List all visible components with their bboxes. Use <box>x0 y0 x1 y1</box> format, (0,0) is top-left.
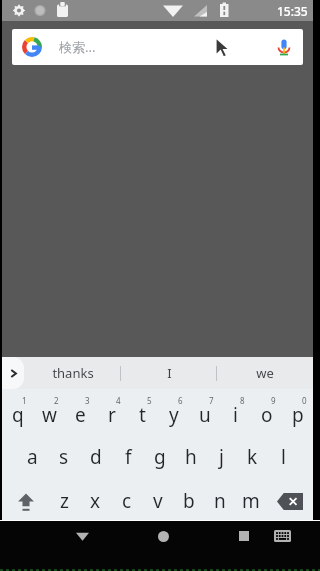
staticText: n <box>214 488 226 514</box>
staticText: j <box>219 444 224 470</box>
staticText: y <box>169 402 179 428</box>
button[interactable]: Hide keyboard <box>65 520 99 552</box>
staticText: 9 <box>271 395 276 406</box>
staticText: v <box>153 488 163 514</box>
staticText: 5 <box>147 395 152 406</box>
button[interactable]: we <box>217 357 313 389</box>
staticText: i <box>233 402 238 428</box>
button[interactable]: thanks <box>24 357 121 389</box>
staticText: k <box>247 444 258 470</box>
button[interactable]: Backspace <box>266 479 313 523</box>
staticText: 7 <box>209 395 214 406</box>
button[interactable]: Shift <box>2 479 49 523</box>
staticText: 4 <box>116 395 121 406</box>
button[interactable]: l <box>268 435 299 479</box>
button[interactable]: 1 <box>2 391 34 435</box>
button[interactable]: More suggestions <box>2 357 24 389</box>
button[interactable]: 3 <box>65 391 96 435</box>
staticText: 検索... <box>59 38 96 56</box>
button[interactable]: Home <box>146 520 180 552</box>
staticText: m <box>242 488 260 514</box>
button[interactable]: m <box>235 479 266 523</box>
button[interactable]: v <box>142 479 173 523</box>
staticText: e <box>75 402 86 428</box>
staticText: c <box>122 488 132 514</box>
staticText: English <box>152 539 190 554</box>
staticText: o <box>261 402 273 428</box>
button[interactable]: 5 <box>127 391 158 435</box>
staticText: l <box>281 444 286 470</box>
staticText: 3 <box>85 395 90 406</box>
staticText: we <box>256 364 274 382</box>
staticText: f <box>125 444 132 470</box>
button[interactable]: 2 <box>34 391 65 435</box>
button[interactable]: f <box>112 435 144 479</box>
staticText: I <box>167 364 172 382</box>
button[interactable]: k <box>237 435 268 479</box>
staticText: q <box>12 402 24 428</box>
staticText: p <box>292 402 304 428</box>
button[interactable]: a <box>16 435 48 479</box>
staticText: 0 <box>302 395 307 406</box>
button[interactable]: d <box>80 435 112 479</box>
staticText: u <box>199 402 211 428</box>
staticText: t <box>139 402 146 428</box>
button[interactable]: g <box>144 435 175 479</box>
staticText: . <box>243 531 248 554</box>
button[interactable]: Search <box>260 523 313 569</box>
staticText: x <box>90 488 101 514</box>
staticText: w <box>42 402 57 428</box>
button[interactable]: h <box>175 435 206 479</box>
staticText: thanks <box>52 364 94 382</box>
button[interactable]: 4 <box>96 391 127 435</box>
staticText: 1 <box>22 395 27 406</box>
staticText: z <box>60 488 69 514</box>
button[interactable]: , <box>51 523 81 569</box>
staticText: d <box>90 444 102 470</box>
button[interactable]: j <box>206 435 237 479</box>
staticText: b <box>183 488 195 514</box>
button[interactable]: Emoji <box>81 523 111 569</box>
button[interactable]: s <box>48 435 80 479</box>
button[interactable]: Switch keyboard <box>265 520 299 552</box>
button[interactable]: b <box>173 479 204 523</box>
button[interactable]: 6 <box>158 391 189 435</box>
button[interactable]: English <box>111 533 230 559</box>
button[interactable]: 0 <box>282 391 313 435</box>
button[interactable]: 7 <box>189 391 220 435</box>
button[interactable]: 検索... <box>12 29 303 65</box>
staticText: a <box>27 444 38 470</box>
staticText: g <box>154 444 166 470</box>
staticText: 8 <box>240 395 245 406</box>
button[interactable]: z <box>49 479 80 523</box>
staticText: 2 <box>54 395 59 406</box>
button[interactable]: 8 <box>220 391 251 435</box>
button[interactable]: n <box>204 479 235 523</box>
button[interactable]: x <box>80 479 111 523</box>
button[interactable]: c <box>111 479 142 523</box>
staticText: r <box>108 402 116 428</box>
staticText: s <box>59 444 69 470</box>
button[interactable]: I <box>121 357 217 389</box>
button[interactable]: Voice search <box>273 36 295 58</box>
staticText: 15:35 <box>277 3 308 19</box>
button[interactable]: 9 <box>251 391 282 435</box>
button[interactable]: . <box>230 523 260 569</box>
staticText: h <box>185 444 197 470</box>
staticText: 6 <box>178 395 183 406</box>
button[interactable]: Recents <box>227 520 261 552</box>
